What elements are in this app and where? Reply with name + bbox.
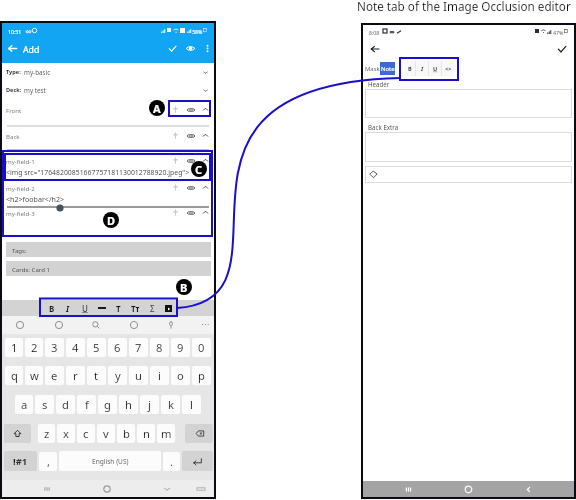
button[interactable]: Emoji <box>16 321 24 329</box>
button[interactable]: h <box>119 395 138 414</box>
button[interactable]: Text colour <box>112 302 124 314</box>
button[interactable]: Attach <box>186 131 196 141</box>
button[interactable]: s <box>35 395 54 414</box>
button[interactable] <box>365 132 572 162</box>
button[interactable]: c <box>77 424 95 443</box>
button[interactable]: j <box>140 395 159 414</box>
button[interactable]: Expand <box>201 208 210 217</box>
button[interactable]: Cards: Card 1 <box>6 261 211 276</box>
button[interactable]: a <box>15 395 33 414</box>
button[interactable]: Back <box>369 43 381 55</box>
button[interactable]: Type: <box>6 65 209 79</box>
button[interactable]: More options <box>202 43 213 54</box>
button[interactable] <box>365 89 572 118</box>
button[interactable]: Settings <box>55 321 63 329</box>
button[interactable]: Recents <box>42 484 52 494</box>
button[interactable]: Shift <box>4 424 31 443</box>
button[interactable]: Attach <box>186 156 196 166</box>
button[interactable]: Stickers <box>130 321 138 329</box>
button[interactable]: Pin <box>171 183 180 192</box>
button[interactable]: q <box>5 366 23 385</box>
button[interactable]: g <box>98 395 117 414</box>
button[interactable]: Save <box>167 43 178 54</box>
button[interactable]: , <box>39 452 57 471</box>
button[interactable]: Underline <box>79 302 91 314</box>
button[interactable]: y <box>108 366 127 385</box>
button[interactable]: 9 <box>171 338 190 357</box>
button[interactable]: Note <box>380 62 395 75</box>
button[interactable] <box>365 166 572 183</box>
button[interactable]: u <box>129 366 148 385</box>
button[interactable]: r <box>66 366 85 385</box>
button[interactable]: w <box>25 366 43 385</box>
button[interactable]: Expand <box>201 183 210 192</box>
button[interactable]: Hide keyboard <box>162 484 172 494</box>
staticText: Deck: <box>6 86 22 94</box>
button[interactable]: Pin <box>171 208 180 217</box>
button[interactable]: o <box>171 366 190 385</box>
button[interactable]: 4 <box>66 338 85 357</box>
button[interactable]: MathJax <box>146 302 158 314</box>
button[interactable]: Pin <box>171 131 180 140</box>
button[interactable]: Expand <box>201 156 210 165</box>
button[interactable]: Home <box>102 484 112 494</box>
button[interactable]: m <box>157 424 175 443</box>
button[interactable]: Backspace <box>185 424 213 443</box>
button[interactable]: Recents <box>403 484 414 495</box>
button[interactable]: Bold <box>46 302 58 314</box>
button[interactable]: 8 <box>150 338 169 357</box>
button[interactable]: Search <box>92 321 100 329</box>
button[interactable]: Italic <box>416 61 428 76</box>
button[interactable]: Expand <box>201 105 210 114</box>
button[interactable]: Preview <box>185 43 196 54</box>
button[interactable]: f <box>77 395 96 414</box>
button[interactable]: Home <box>463 484 474 495</box>
button[interactable]: Mask <box>364 62 381 75</box>
button[interactable]: Horizontal rule <box>96 302 108 314</box>
button[interactable]: z <box>38 424 55 443</box>
button[interactable]: n <box>137 424 155 443</box>
button[interactable]: English (US) <box>59 451 161 471</box>
button[interactable]: Back <box>6 42 19 55</box>
button[interactable]: p <box>192 366 211 385</box>
button[interactable]: 7 <box>129 338 148 357</box>
button[interactable]: Keyboard layout <box>196 484 206 494</box>
button[interactable]: Underline <box>429 61 441 76</box>
button[interactable]: e <box>45 366 64 385</box>
button[interactable]: k <box>161 395 180 414</box>
button[interactable]: b <box>117 424 135 443</box>
button[interactable]: 1 <box>5 338 23 357</box>
button[interactable]: . <box>163 452 180 471</box>
button[interactable]: Bold <box>404 61 415 76</box>
button[interactable]: 2 <box>25 338 43 357</box>
button[interactable]: Attach <box>186 208 196 218</box>
button[interactable]: Expand <box>201 131 210 140</box>
button[interactable]: Deck: <box>6 83 209 97</box>
button[interactable]: l <box>182 395 201 414</box>
button[interactable]: 6 <box>108 338 127 357</box>
button[interactable]: v <box>97 424 115 443</box>
button[interactable]: Pin <box>171 156 180 165</box>
button[interactable]: More <box>200 320 209 329</box>
button[interactable]: d <box>56 395 75 414</box>
button[interactable]: Pin <box>171 105 180 114</box>
button[interactable]: 0 <box>192 338 211 357</box>
button[interactable]: t <box>87 366 106 385</box>
staticText: I <box>66 303 70 314</box>
button[interactable]: Enter <box>182 451 213 471</box>
button[interactable]: Code <box>442 61 454 76</box>
button[interactable]: Back <box>523 484 534 495</box>
button[interactable]: Tags: <box>6 242 211 257</box>
button[interactable]: Voice input <box>167 321 175 329</box>
button[interactable]: i <box>150 366 169 385</box>
button[interactable]: Italic <box>62 302 74 314</box>
button[interactable]: !#1 <box>4 451 37 471</box>
button[interactable]: Attach <box>186 183 196 193</box>
button[interactable]: Insert <box>162 302 174 314</box>
button[interactable]: 5 <box>87 338 106 357</box>
button[interactable]: 3 <box>45 338 64 357</box>
button[interactable]: x <box>57 424 75 443</box>
button[interactable]: Font size <box>129 302 141 314</box>
button[interactable]: Save <box>556 43 568 55</box>
button[interactable]: Attach <box>186 105 196 115</box>
